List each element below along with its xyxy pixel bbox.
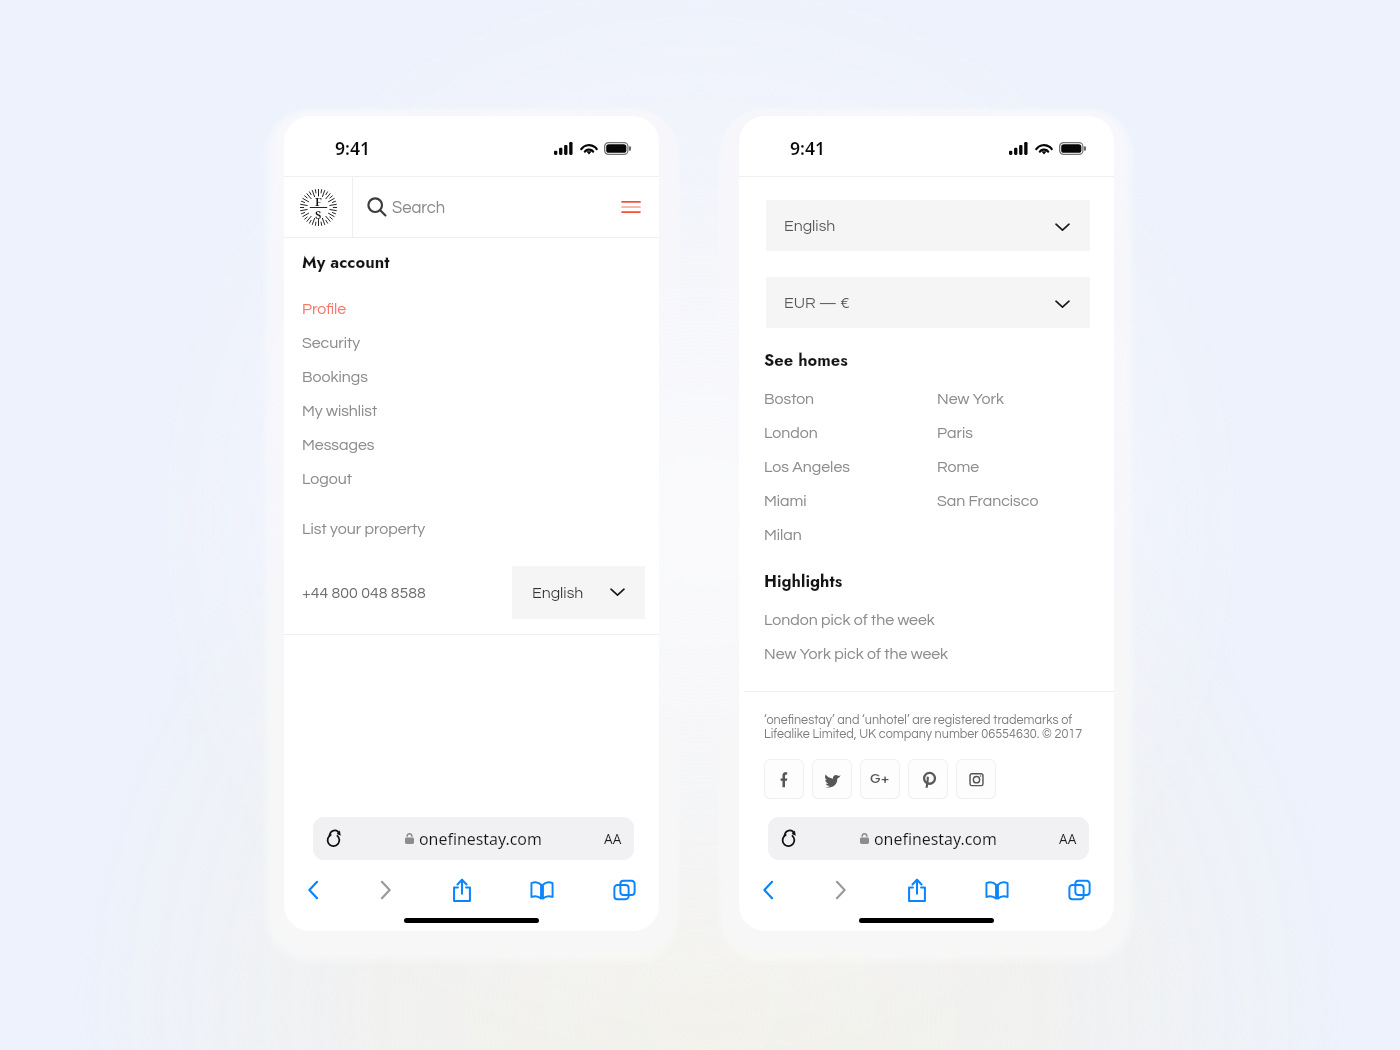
- button[interactable]: Share: [896, 869, 938, 911]
- button[interactable]: Forward: [364, 869, 406, 911]
- staticText: Los Angeles: [764, 459, 850, 475]
- staticText: 9:41: [790, 136, 826, 160]
- button[interactable]: Rome: [937, 450, 1087, 484]
- button[interactable]: List your property: [284, 512, 659, 546]
- staticText: AA: [1059, 830, 1077, 848]
- button[interactable]: London pick of the week: [739, 603, 1114, 637]
- button[interactable]: Logout: [284, 462, 659, 496]
- staticText: S: [315, 207, 322, 222]
- staticText: Paris: [937, 425, 973, 441]
- staticText: EUR — €: [784, 295, 850, 311]
- staticText: AA: [604, 830, 622, 848]
- staticText: Miami: [764, 493, 807, 509]
- staticText: F: [315, 194, 322, 209]
- staticText: My wishlist: [302, 403, 378, 419]
- staticText: G+: [870, 769, 890, 789]
- staticText: Rome: [937, 459, 980, 475]
- button[interactable]: Pinterest: [909, 760, 947, 798]
- button[interactable]: Bookmarks: [976, 869, 1018, 911]
- staticText: English: [784, 218, 836, 234]
- button[interactable]: Twitter: [813, 760, 851, 798]
- button[interactable]: onefinestay home: [284, 177, 352, 237]
- button[interactable]: San Francisco: [937, 484, 1087, 518]
- button[interactable]: Share: [441, 869, 483, 911]
- button[interactable]: Tabs: [1058, 869, 1100, 911]
- button[interactable]: Facebook: [765, 760, 803, 798]
- staticText: ‘onefinestay’ and ‘unhotel’ are register…: [764, 714, 1083, 740]
- button[interactable]: Instagram: [957, 760, 995, 798]
- staticText: onefinestay.com: [874, 828, 997, 850]
- button[interactable]: New York: [937, 382, 1087, 416]
- button[interactable]: English: [766, 200, 1090, 251]
- button[interactable]: +44 800 048 8588: [302, 585, 426, 601]
- button[interactable]: onefinestay.com: [768, 817, 1089, 860]
- staticText: List your property: [302, 521, 426, 537]
- button[interactable]: Paris: [937, 416, 1087, 450]
- staticText: Security: [302, 335, 361, 351]
- staticText: Boston: [764, 391, 815, 407]
- staticText: My account: [302, 250, 390, 274]
- staticText: San Francisco: [937, 493, 1039, 509]
- button[interactable]: Back: [748, 869, 790, 911]
- staticText: New York pick of the week: [764, 646, 949, 662]
- staticText: London: [764, 425, 818, 441]
- staticText: 9:41: [335, 136, 371, 160]
- button[interactable]: Tabs: [603, 869, 645, 911]
- button[interactable]: Search: [353, 177, 602, 237]
- staticText: onefinestay.com: [419, 828, 542, 850]
- button[interactable]: Open menu: [602, 177, 659, 237]
- button[interactable]: English: [512, 566, 645, 619]
- button[interactable]: Google Plus: [861, 760, 899, 798]
- staticText: Search: [392, 199, 446, 216]
- button[interactable]: London: [764, 416, 907, 450]
- staticText: Logout: [302, 471, 352, 487]
- button[interactable]: Boston: [764, 382, 907, 416]
- staticText: Highlights: [764, 569, 843, 593]
- staticText: Bookings: [302, 369, 368, 385]
- button[interactable]: Back: [293, 869, 335, 911]
- staticText: Profile: [302, 301, 347, 317]
- button[interactable]: Miami: [764, 484, 907, 518]
- staticText: London pick of the week: [764, 612, 935, 628]
- button[interactable]: onefinestay.com: [313, 817, 634, 860]
- button[interactable]: New York pick of the week: [739, 637, 1114, 671]
- staticText: Milan: [764, 527, 802, 543]
- button[interactable]: Bookmarks: [521, 869, 563, 911]
- button[interactable]: Security: [284, 326, 659, 360]
- staticText: See homes: [764, 348, 848, 372]
- button[interactable]: My wishlist: [284, 394, 659, 428]
- staticText: Messages: [302, 437, 375, 453]
- button[interactable]: Bookings: [284, 360, 659, 394]
- staticText: English: [532, 585, 584, 601]
- button[interactable]: Profile: [284, 292, 659, 326]
- button[interactable]: Messages: [284, 428, 659, 462]
- button[interactable]: Milan: [764, 518, 907, 552]
- staticText: New York: [937, 391, 1004, 407]
- button[interactable]: Los Angeles: [764, 450, 907, 484]
- button[interactable]: EUR — €: [766, 277, 1090, 328]
- button[interactable]: Forward: [819, 869, 861, 911]
